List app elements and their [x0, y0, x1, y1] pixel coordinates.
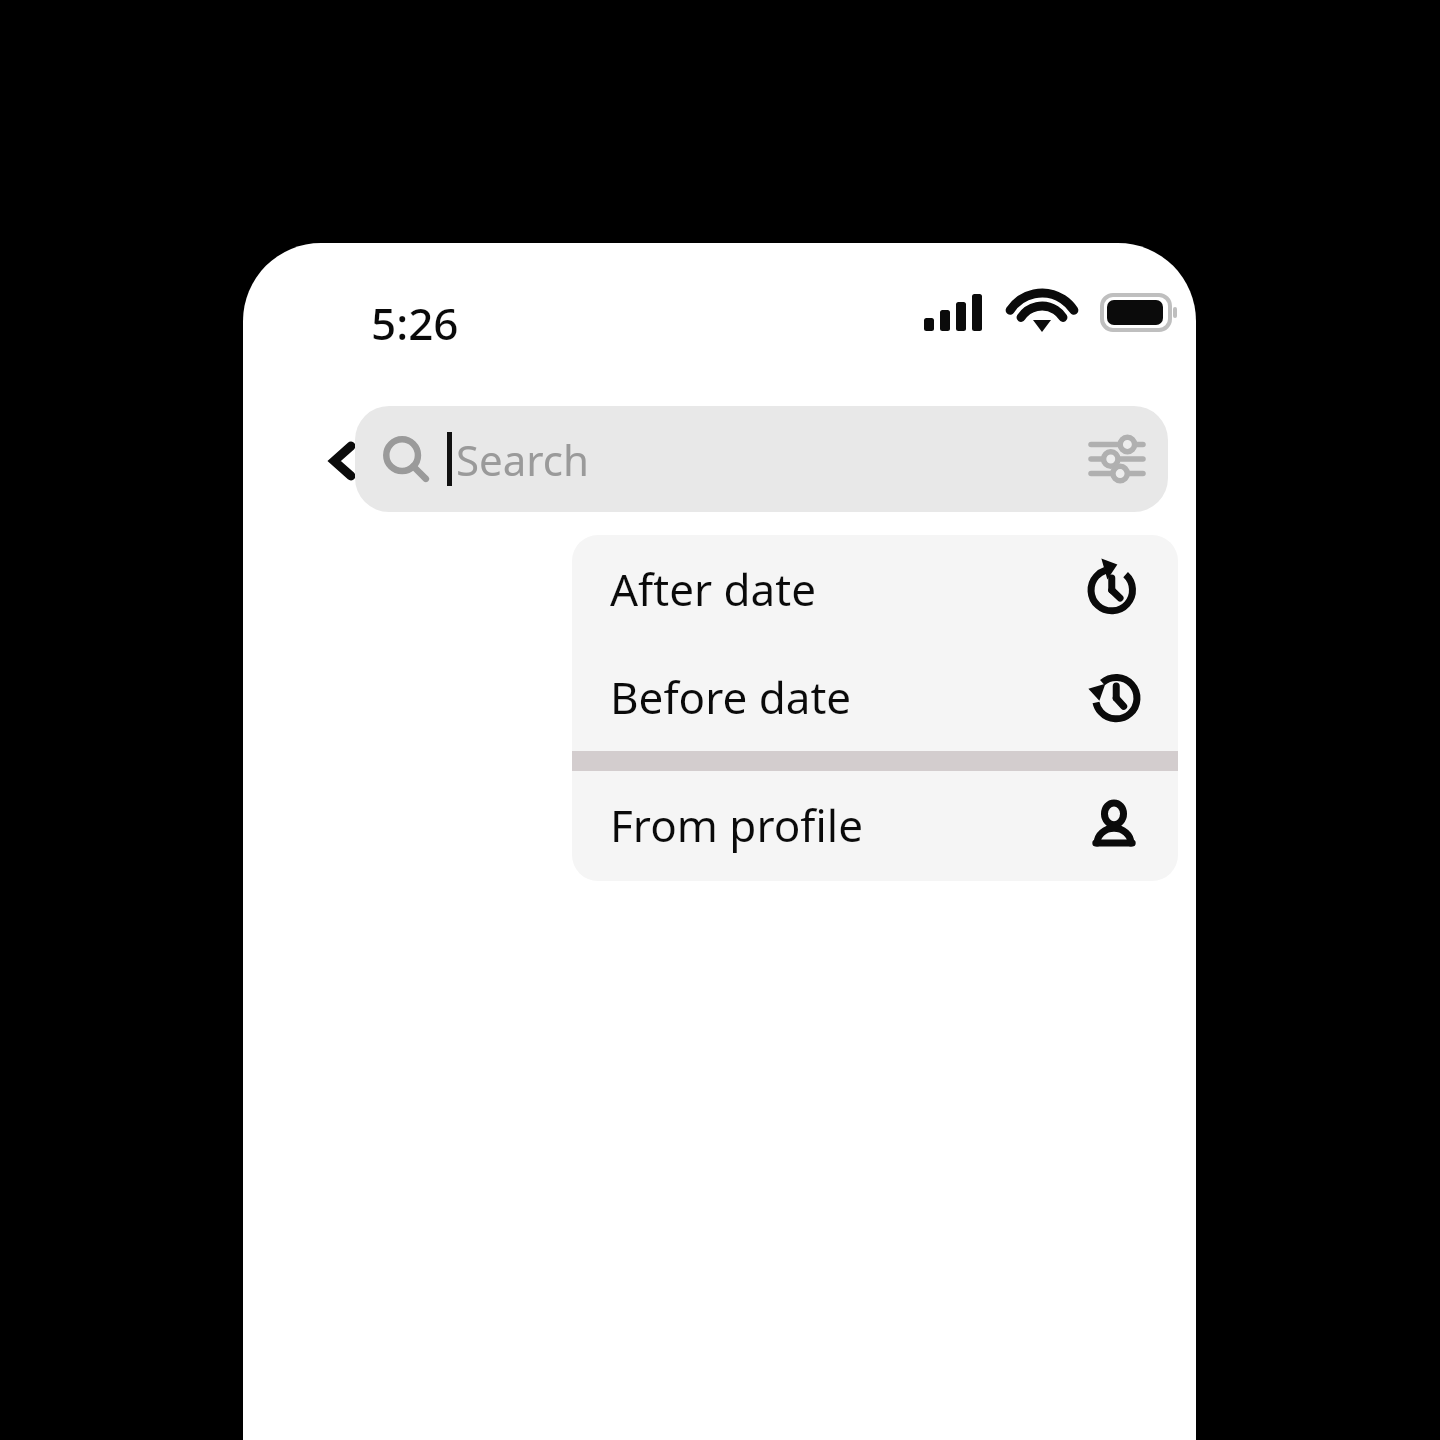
- staticText: After date: [610, 559, 817, 619]
- staticText: Before date: [610, 667, 852, 727]
- staticText: 5:26: [371, 293, 459, 353]
- staticText: Search: [456, 431, 589, 488]
- button[interactable]: Search: [355, 406, 1168, 512]
- button[interactable]: After date: [572, 535, 1178, 643]
- button[interactable]: Filter options: [1074, 416, 1160, 502]
- button[interactable]: From profile: [572, 771, 1178, 879]
- button[interactable]: Before date: [572, 643, 1178, 751]
- staticText: From profile: [610, 795, 863, 855]
- button[interactable]: Back: [303, 421, 383, 501]
